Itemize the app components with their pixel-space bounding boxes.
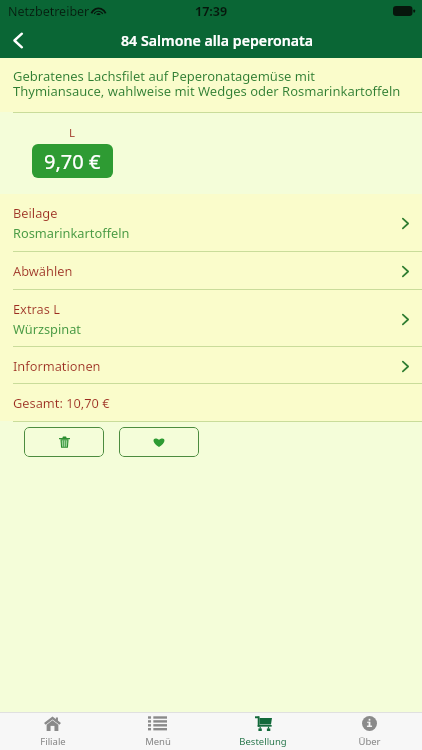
staticText: Über — [358, 735, 381, 748]
staticText: Informationen — [13, 357, 101, 374]
staticText: Rosmarinkartoffeln — [13, 224, 130, 241]
button[interactable]: Extras L — [0, 290, 422, 346]
staticText: 84 Salmone alla peperonata — [121, 31, 314, 50]
button[interactable]: Bestellung — [210, 713, 316, 750]
button[interactable]: Filiale — [0, 713, 105, 750]
staticText: Beilage — [13, 204, 58, 221]
staticText: Gesamt: 10,70 € — [13, 394, 110, 411]
button[interactable]: Abwählen — [0, 252, 422, 289]
staticText: Extras L — [13, 300, 60, 317]
staticText: Filiale — [40, 735, 66, 748]
staticText: Bestellung — [239, 735, 287, 748]
staticText: Netzbetreiber — [8, 3, 90, 20]
button[interactable]: 9,70 € — [32, 144, 113, 178]
staticText: 9,70 € — [44, 148, 101, 175]
button[interactable]: Informationen — [0, 347, 422, 383]
button[interactable]: Back — [0, 22, 36, 58]
staticText: Gebratenes Lachsfilet auf Peperonatagemü… — [13, 67, 401, 100]
staticText: Würzspinat — [13, 320, 81, 337]
staticText: Menü — [145, 735, 171, 748]
button[interactable]: Beilage — [0, 194, 422, 251]
button[interactable]: Delete — [24, 427, 104, 457]
button[interactable]: Favorite — [119, 427, 199, 457]
staticText: L — [69, 125, 76, 141]
button[interactable]: Menü — [105, 713, 210, 750]
staticText: 17:39 — [195, 3, 228, 20]
button[interactable]: Über — [316, 713, 422, 750]
staticText: Abwählen — [13, 262, 73, 279]
